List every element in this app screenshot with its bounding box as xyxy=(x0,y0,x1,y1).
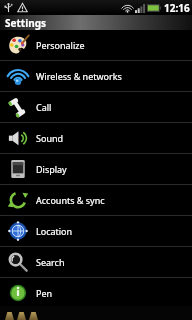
button[interactable]: Call xyxy=(0,92,192,122)
staticText: Pen xyxy=(36,287,53,299)
staticText: Call xyxy=(36,101,52,113)
button[interactable]: Pen xyxy=(0,278,192,308)
staticText: Location xyxy=(36,225,73,237)
staticText: Settings xyxy=(5,16,46,30)
button[interactable]: Location xyxy=(0,216,192,246)
button[interactable]: Display xyxy=(0,154,192,184)
button[interactable]: Shortcut xyxy=(17,312,26,320)
button[interactable]: Wireless & networks xyxy=(0,61,192,91)
button[interactable]: Personalize xyxy=(0,30,192,60)
button[interactable]: Search xyxy=(0,247,192,277)
button[interactable]: Accounts & sync xyxy=(0,185,192,215)
staticText: Wireless & networks xyxy=(36,70,122,82)
button[interactable]: Shortcut xyxy=(5,312,14,320)
staticText: Sound xyxy=(36,132,64,144)
staticText: Accounts & sync xyxy=(36,194,105,206)
button[interactable]: Sound xyxy=(0,123,192,153)
button[interactable]: Shortcut xyxy=(29,312,38,320)
staticText: Display xyxy=(36,163,67,175)
staticText: Personalize xyxy=(36,39,85,51)
staticText: Search xyxy=(36,256,65,268)
staticText: 12:16 xyxy=(164,1,190,15)
